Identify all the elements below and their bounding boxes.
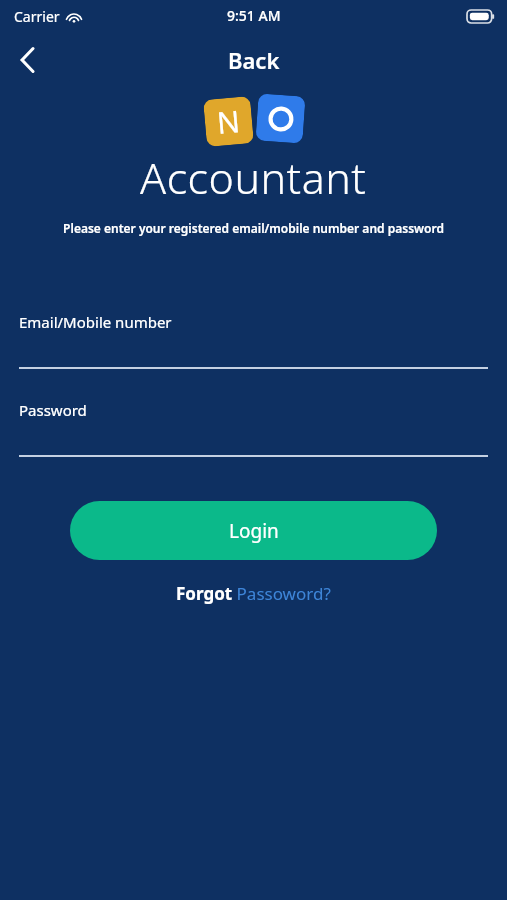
staticText: Email/Mobile number bbox=[19, 312, 172, 332]
staticText: Carrier bbox=[14, 7, 60, 26]
button[interactable] bbox=[19, 349, 488, 369]
staticText: Please enter your registered email/mobil… bbox=[12, 220, 495, 236]
button[interactable] bbox=[19, 437, 488, 457]
staticText: 9:51 AM bbox=[227, 6, 281, 25]
staticText: Login bbox=[229, 518, 279, 544]
staticText: Accountant bbox=[140, 148, 367, 207]
button[interactable]: Login bbox=[70, 501, 437, 560]
staticText: Back bbox=[228, 45, 280, 75]
staticText: Password bbox=[19, 400, 87, 420]
button[interactable]: Back bbox=[6, 38, 50, 82]
staticText: N bbox=[215, 100, 242, 143]
staticText: Forgot Passoword? bbox=[176, 582, 331, 605]
button[interactable]: Forgot Passoword? bbox=[168, 578, 339, 609]
